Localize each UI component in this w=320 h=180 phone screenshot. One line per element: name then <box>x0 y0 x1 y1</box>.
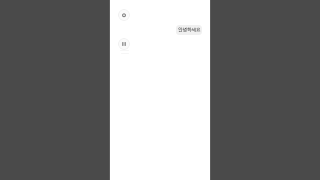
button[interactable]: 안녕하세요 <box>176 25 202 35</box>
staticText: 안녕하세요 <box>178 27 201 33</box>
button[interactable]: Image message <box>118 9 130 21</box>
button[interactable]: Pause voice message <box>118 38 130 50</box>
